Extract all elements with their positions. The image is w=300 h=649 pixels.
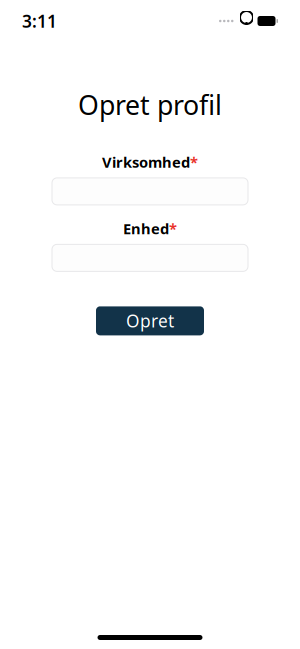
- staticText: *: [169, 219, 177, 238]
- staticText: *: [190, 152, 198, 172]
- staticText: Enhed: [123, 219, 169, 238]
- staticText: 3:11: [22, 9, 57, 32]
- button[interactable]: Opret: [96, 306, 204, 335]
- staticText: Virksomhed: [102, 152, 190, 172]
- staticText: Opret profil: [78, 87, 222, 122]
- staticText: Opret: [126, 309, 174, 332]
